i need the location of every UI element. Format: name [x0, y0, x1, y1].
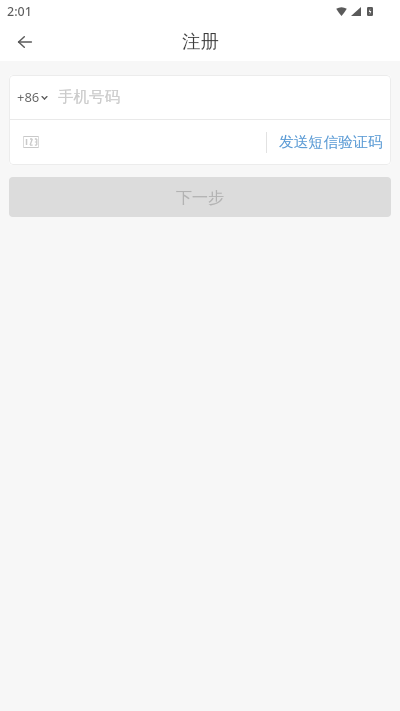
button[interactable]: 发送短信验证码 — [267, 125, 391, 160]
button[interactable]: Captcha image — [23, 136, 39, 148]
staticText: +86 — [17, 88, 40, 106]
staticText: 注册 — [182, 30, 219, 53]
staticText: 发送短信验证码 — [279, 133, 383, 152]
button[interactable]: Back — [5, 22, 45, 61]
button[interactable]: 下一步 — [9, 177, 391, 217]
staticText: 下一步 — [176, 188, 224, 208]
button[interactable]: +86 — [9, 82, 51, 112]
staticText: 2:01 — [7, 3, 32, 20]
staticText: 手机号码 — [58, 87, 120, 107]
